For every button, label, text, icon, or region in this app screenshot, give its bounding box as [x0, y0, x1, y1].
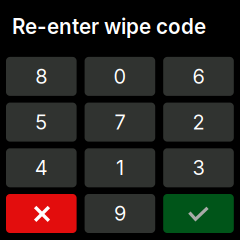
- staticText: 0: [113, 64, 126, 88]
- button[interactable]: 7: [85, 103, 155, 142]
- staticText: 1: [116, 156, 124, 180]
- staticText: 2: [192, 110, 204, 134]
- button[interactable]: Cancel: [6, 194, 77, 233]
- staticText: 9: [114, 201, 126, 226]
- button[interactable]: 5: [6, 103, 77, 142]
- staticText: 6: [192, 64, 204, 88]
- staticText: Re-enter wipe code: [12, 14, 206, 39]
- staticText: 8: [35, 64, 47, 88]
- button[interactable]: 8: [6, 57, 77, 96]
- button[interactable]: 1: [85, 148, 155, 187]
- staticText: 5: [35, 110, 47, 134]
- staticText: 3: [192, 156, 204, 180]
- staticText: 4: [35, 156, 48, 180]
- button[interactable]: 9: [85, 194, 155, 233]
- staticText: 7: [114, 110, 125, 134]
- button[interactable]: Confirm: [163, 194, 234, 233]
- button[interactable]: 4: [6, 148, 77, 187]
- button[interactable]: 6: [163, 57, 234, 96]
- button[interactable]: 3: [163, 148, 234, 187]
- button[interactable]: 0: [85, 57, 155, 96]
- button[interactable]: 2: [163, 103, 234, 142]
